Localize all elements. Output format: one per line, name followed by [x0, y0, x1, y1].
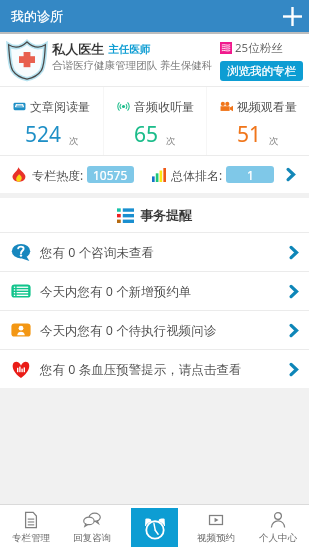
staticText: 个人中心 [259, 532, 297, 544]
button[interactable]: 专栏管理 [0, 505, 61, 550]
staticText: 视频观看量 [237, 99, 297, 114]
button[interactable]: Reminders [123, 505, 185, 550]
button[interactable]: 个人中心 [247, 505, 309, 550]
staticText: 1 [247, 167, 254, 183]
button[interactable]: 视频预约 [185, 505, 247, 550]
button[interactable]: 音频收听量 [104, 87, 206, 155]
staticText: 视频预约 [197, 532, 235, 544]
staticText: 次 [269, 135, 279, 147]
staticText: 主任医师 [108, 43, 150, 56]
button[interactable]: 您有 0 条血压预警提示，请点击查看 [0, 350, 309, 388]
staticText: 我的诊所 [11, 8, 63, 24]
button[interactable]: 浏览我的专栏 [220, 61, 303, 81]
staticText: 回复咨询 [73, 532, 111, 544]
staticText: 524 [25, 120, 62, 149]
staticText: 专栏管理 [12, 532, 50, 544]
staticText: 您有 0 个咨询未查看 [40, 244, 154, 261]
staticText: 今天内您有 0 个新增预约单 [40, 283, 192, 300]
button[interactable]: 视频观看量 [207, 87, 309, 155]
button[interactable]: 专栏热度: [0, 156, 309, 193]
button[interactable]: Add [275, 0, 309, 32]
staticText: 65 [134, 120, 159, 149]
button[interactable]: 您有 0 个咨询未查看 [0, 233, 309, 271]
staticText: 文章阅读量 [30, 99, 90, 114]
staticText: 专栏热度: [32, 167, 84, 183]
staticText: 10575 [93, 167, 128, 183]
staticText: 25位粉丝 [235, 40, 283, 56]
button[interactable]: 文章阅读量 [0, 87, 103, 155]
staticText: 事务提醒 [140, 207, 192, 223]
staticText: 私人医生 [52, 41, 104, 57]
staticText: 总体排名: [171, 167, 223, 183]
button[interactable]: 今天内您有 0 个新增预约单 [0, 272, 309, 310]
staticText: 浏览我的专栏 [227, 64, 296, 78]
staticText: 合谐医疗健康管理团队 养生保健科 [52, 58, 213, 72]
staticText: 51 [237, 120, 262, 149]
button[interactable]: 回复咨询 [61, 505, 123, 550]
button[interactable]: 私人医生 [0, 34, 309, 86]
staticText: 次 [166, 135, 176, 147]
button[interactable]: 今天内您有 0 个待执行视频问诊 [0, 311, 309, 349]
staticText: 次 [69, 135, 79, 147]
staticText: 您有 0 条血压预警提示，请点击查看 [40, 361, 242, 378]
staticText: 音频收听量 [134, 99, 194, 114]
staticText: 今天内您有 0 个待执行视频问诊 [40, 322, 217, 339]
other: Reminders [131, 508, 178, 547]
